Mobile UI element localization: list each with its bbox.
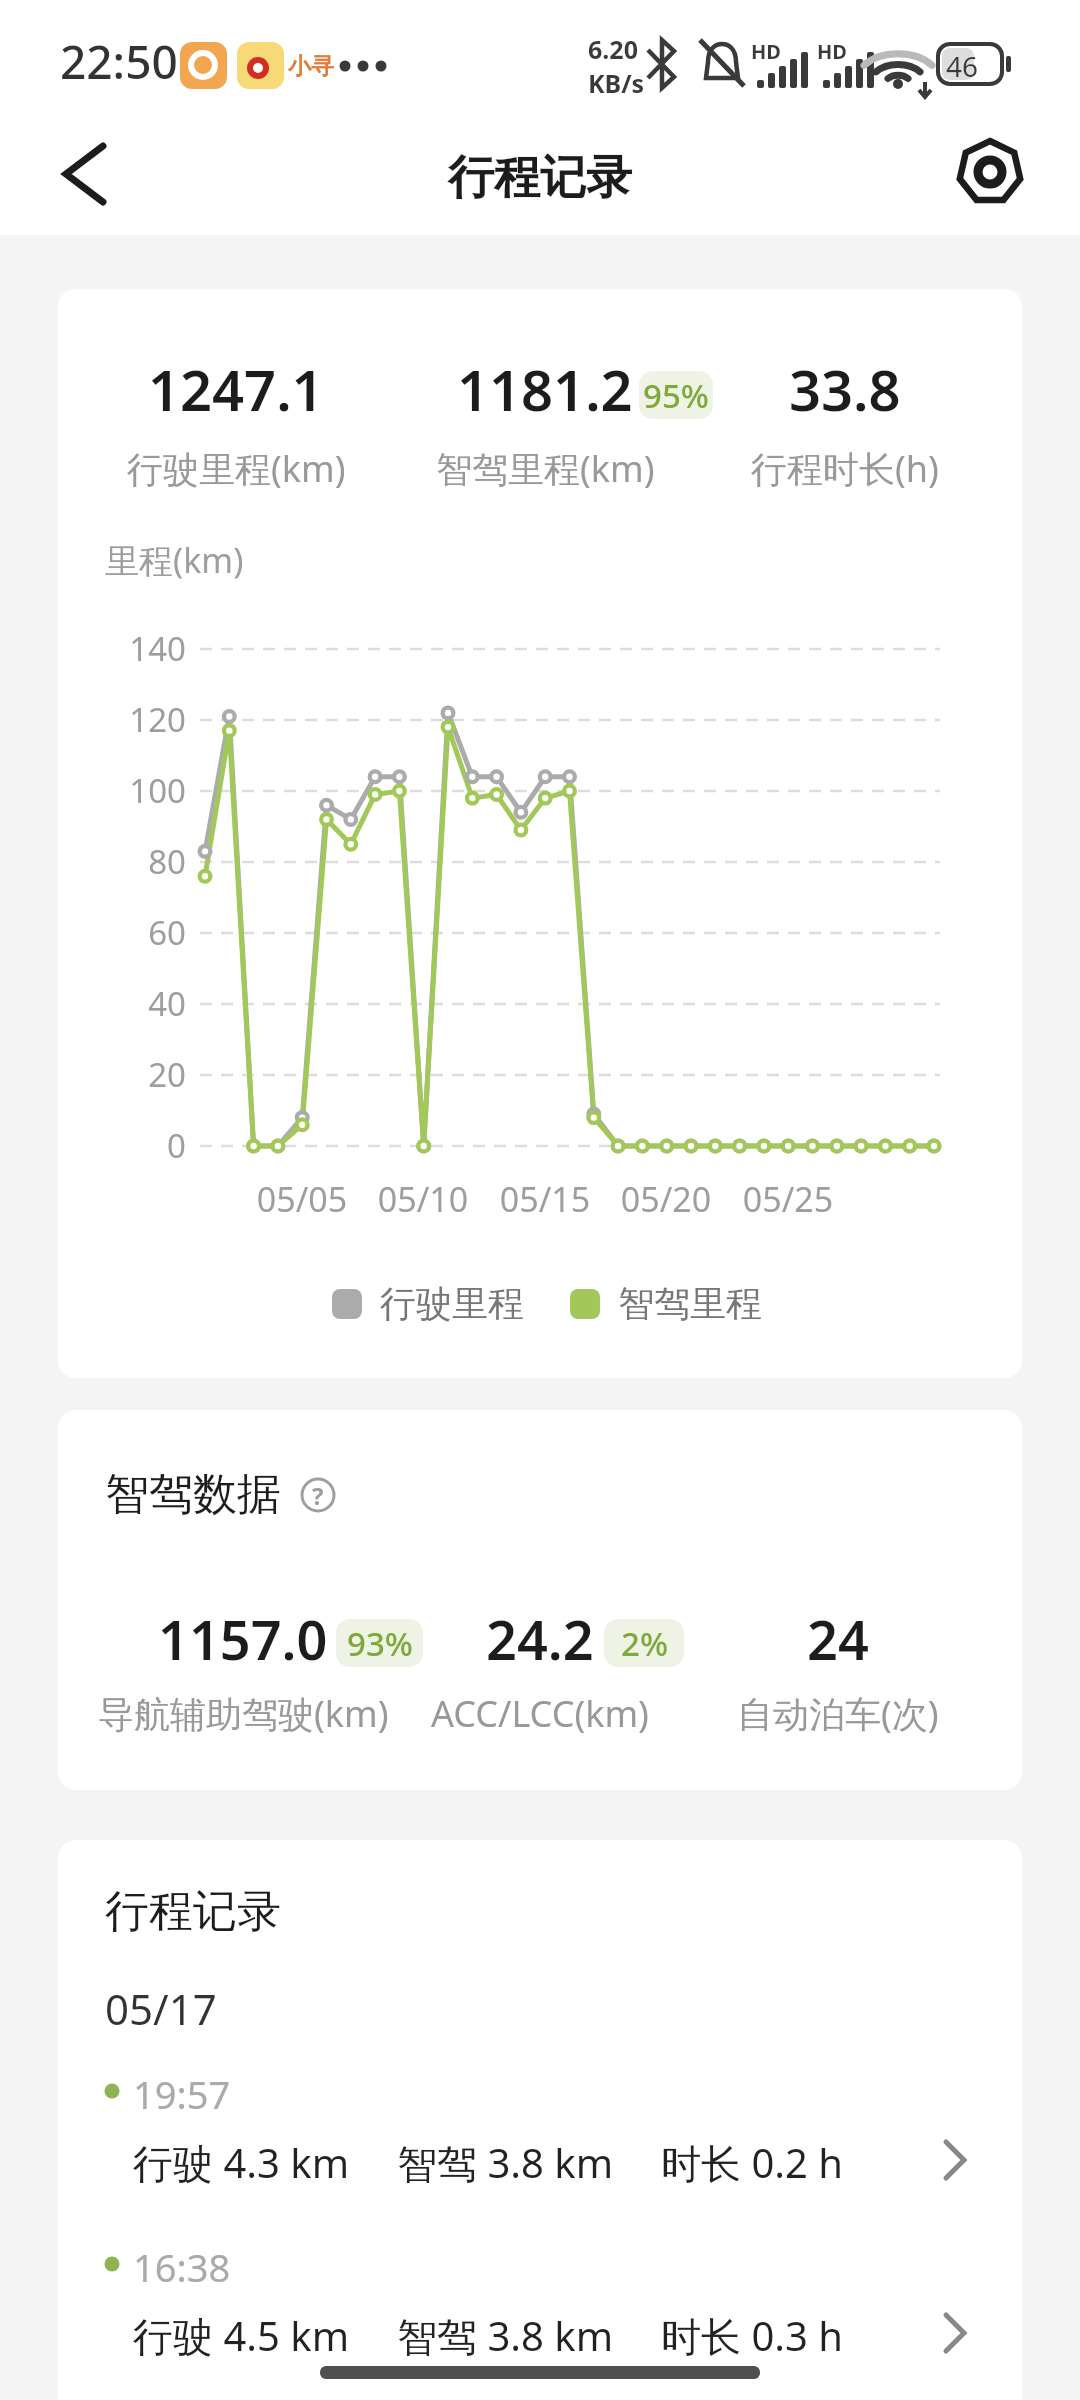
staticText: 140 [58, 626, 186, 671]
staticText: 行程时长(h) [751, 444, 939, 493]
staticText: 行程记录 [105, 1884, 281, 1939]
staticText: 小寻 [288, 52, 334, 81]
staticText: 24 [807, 1602, 869, 1676]
staticText: KB/s [588, 66, 645, 100]
staticText: 行驶里程 [380, 1281, 524, 1326]
staticText: 行程记录 [448, 149, 632, 207]
staticText: 2% [621, 1621, 668, 1666]
staticText: 里程(km) [105, 537, 244, 583]
staticText: 05/25 [728, 1176, 848, 1222]
staticText: 智驾 3.8 km [397, 2135, 614, 2190]
staticText: 智驾数据 [105, 1467, 281, 1522]
staticText: 46 [946, 47, 979, 85]
staticText: 导航辅助驾驶(km) [98, 1689, 389, 1738]
staticText: 33.8 [789, 351, 901, 427]
staticText: 120 [58, 697, 186, 742]
staticText: HD [751, 38, 781, 65]
staticText: 95% [643, 373, 709, 418]
button[interactable]: 16:38 [58, 2243, 1022, 2400]
staticText: 智驾里程 [618, 1281, 762, 1326]
staticText: 05/10 [363, 1176, 483, 1222]
staticText: 60 [58, 910, 186, 955]
staticText: 智驾 3.8 km [397, 2308, 614, 2363]
staticText: 时长 0.3 h [661, 2308, 843, 2363]
staticText: 1247.1 [148, 351, 324, 427]
staticText: 行驶 4.3 km [133, 2135, 350, 2190]
staticText: 40 [58, 981, 186, 1026]
staticText: 05/15 [485, 1176, 605, 1222]
staticText: 20 [58, 1052, 186, 1097]
staticText: 16:38 [133, 2241, 231, 2293]
staticText: ACC/LCC(km) [431, 1689, 649, 1738]
staticText: 24.2 [486, 1602, 594, 1676]
staticText: 行驶里程(km) [127, 444, 346, 493]
staticText: 05/20 [606, 1176, 726, 1222]
button[interactable] [40, 133, 120, 213]
button[interactable]: 19:57 [58, 2070, 1022, 2236]
staticText: 93% [347, 1621, 413, 1666]
staticText: 22:50 [60, 30, 178, 93]
staticText: 1157.0 [158, 1602, 328, 1676]
staticText: 时长 0.2 h [661, 2135, 843, 2190]
staticText: 智驾里程(km) [436, 444, 655, 493]
staticText: 80 [58, 839, 186, 884]
staticText: 行驶 4.5 km [133, 2308, 350, 2363]
staticText: 05/17 [105, 1980, 217, 2037]
staticText: 05/05 [242, 1176, 362, 1222]
staticText: HD [817, 38, 847, 65]
button[interactable] [950, 132, 1030, 212]
staticText: 100 [58, 768, 186, 813]
staticText: ? [312, 1479, 324, 1512]
staticText: 0 [58, 1123, 186, 1168]
staticText: 6.20 [588, 32, 638, 66]
staticText: 19:57 [133, 2068, 231, 2120]
staticText: 1181.2 [457, 351, 633, 427]
staticText: 自动泊车(次) [737, 1689, 939, 1738]
